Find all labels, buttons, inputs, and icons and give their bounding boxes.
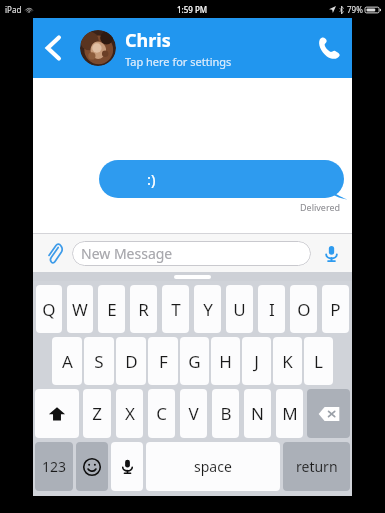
button[interactable]: V (180, 389, 207, 438)
button[interactable]: Call (306, 18, 352, 78)
staticText: E (107, 298, 117, 321)
button[interactable]: K (273, 337, 302, 385)
button[interactable]: F (148, 337, 178, 385)
button[interactable]: L (304, 337, 333, 385)
staticText: J (254, 350, 259, 373)
staticText: space (194, 457, 232, 476)
staticText: C (156, 402, 167, 425)
staticText: W (72, 298, 88, 321)
staticText: 79% (347, 4, 363, 15)
button[interactable]: A (52, 337, 82, 385)
button[interactable]: C (148, 389, 175, 438)
staticText: I (269, 298, 275, 321)
staticText: T (171, 298, 181, 321)
button[interactable]: Y (194, 285, 221, 333)
button[interactable]: G (180, 337, 209, 385)
staticText: V (188, 402, 199, 425)
button[interactable]: Back (33, 18, 73, 78)
staticText: return (296, 457, 338, 476)
staticText: New Message (81, 244, 173, 263)
button[interactable]: W (67, 285, 93, 333)
staticText: K (282, 350, 293, 373)
button[interactable]: T (162, 285, 189, 333)
button[interactable]: N (244, 389, 271, 438)
staticText: iPad (5, 4, 22, 15)
staticText: N (251, 402, 264, 425)
staticText: Y (203, 298, 213, 321)
button[interactable]: Emoji (76, 442, 108, 491)
staticText: U (233, 298, 246, 321)
button[interactable]: Chris (80, 23, 232, 73)
button[interactable]: R (130, 285, 157, 333)
staticText: G (188, 350, 201, 373)
staticText: 1:59 PM (177, 4, 208, 15)
button[interactable]: X (116, 389, 143, 438)
staticText: M (282, 402, 298, 425)
staticText: H (219, 350, 232, 373)
staticText: Tap here for settings (125, 54, 232, 69)
button[interactable]: Delete (307, 389, 350, 438)
staticText: F (159, 350, 168, 373)
button[interactable]: space (146, 442, 280, 491)
button[interactable]: Z (83, 389, 111, 438)
button[interactable]: I (258, 285, 285, 333)
staticText: S (94, 350, 104, 373)
button[interactable]: J (242, 337, 271, 385)
button[interactable]: S (84, 337, 114, 385)
button[interactable]: Numbers (35, 442, 73, 491)
button[interactable]: return (283, 442, 350, 491)
button[interactable]: Q (36, 285, 62, 333)
staticText: 123 (42, 457, 67, 476)
button[interactable]: Dictation (111, 442, 143, 491)
staticText: Delivered (300, 201, 341, 213)
staticText: P (330, 298, 341, 321)
button[interactable]: New Message (72, 241, 311, 266)
staticText: :) (147, 169, 156, 189)
button[interactable]: Voice message (319, 241, 343, 265)
button[interactable]: U (226, 285, 253, 333)
button[interactable]: Attach (42, 241, 66, 265)
staticText: Z (92, 402, 102, 425)
staticText: D (125, 350, 138, 373)
button[interactable]: D (116, 337, 146, 385)
staticText: Q (42, 298, 56, 321)
staticText: O (297, 298, 311, 321)
button[interactable]: B (212, 389, 239, 438)
staticText: L (314, 350, 323, 373)
staticText: A (62, 350, 73, 373)
button[interactable]: Shift (35, 389, 79, 438)
button[interactable]: O (290, 285, 317, 333)
staticText: Chris (125, 28, 171, 53)
button[interactable]: E (98, 285, 125, 333)
button[interactable]: P (322, 285, 349, 333)
button[interactable]: M (276, 389, 303, 438)
staticText: B (220, 402, 232, 425)
staticText: R (138, 298, 149, 321)
staticText: X (125, 402, 135, 425)
button[interactable]: H (211, 337, 240, 385)
